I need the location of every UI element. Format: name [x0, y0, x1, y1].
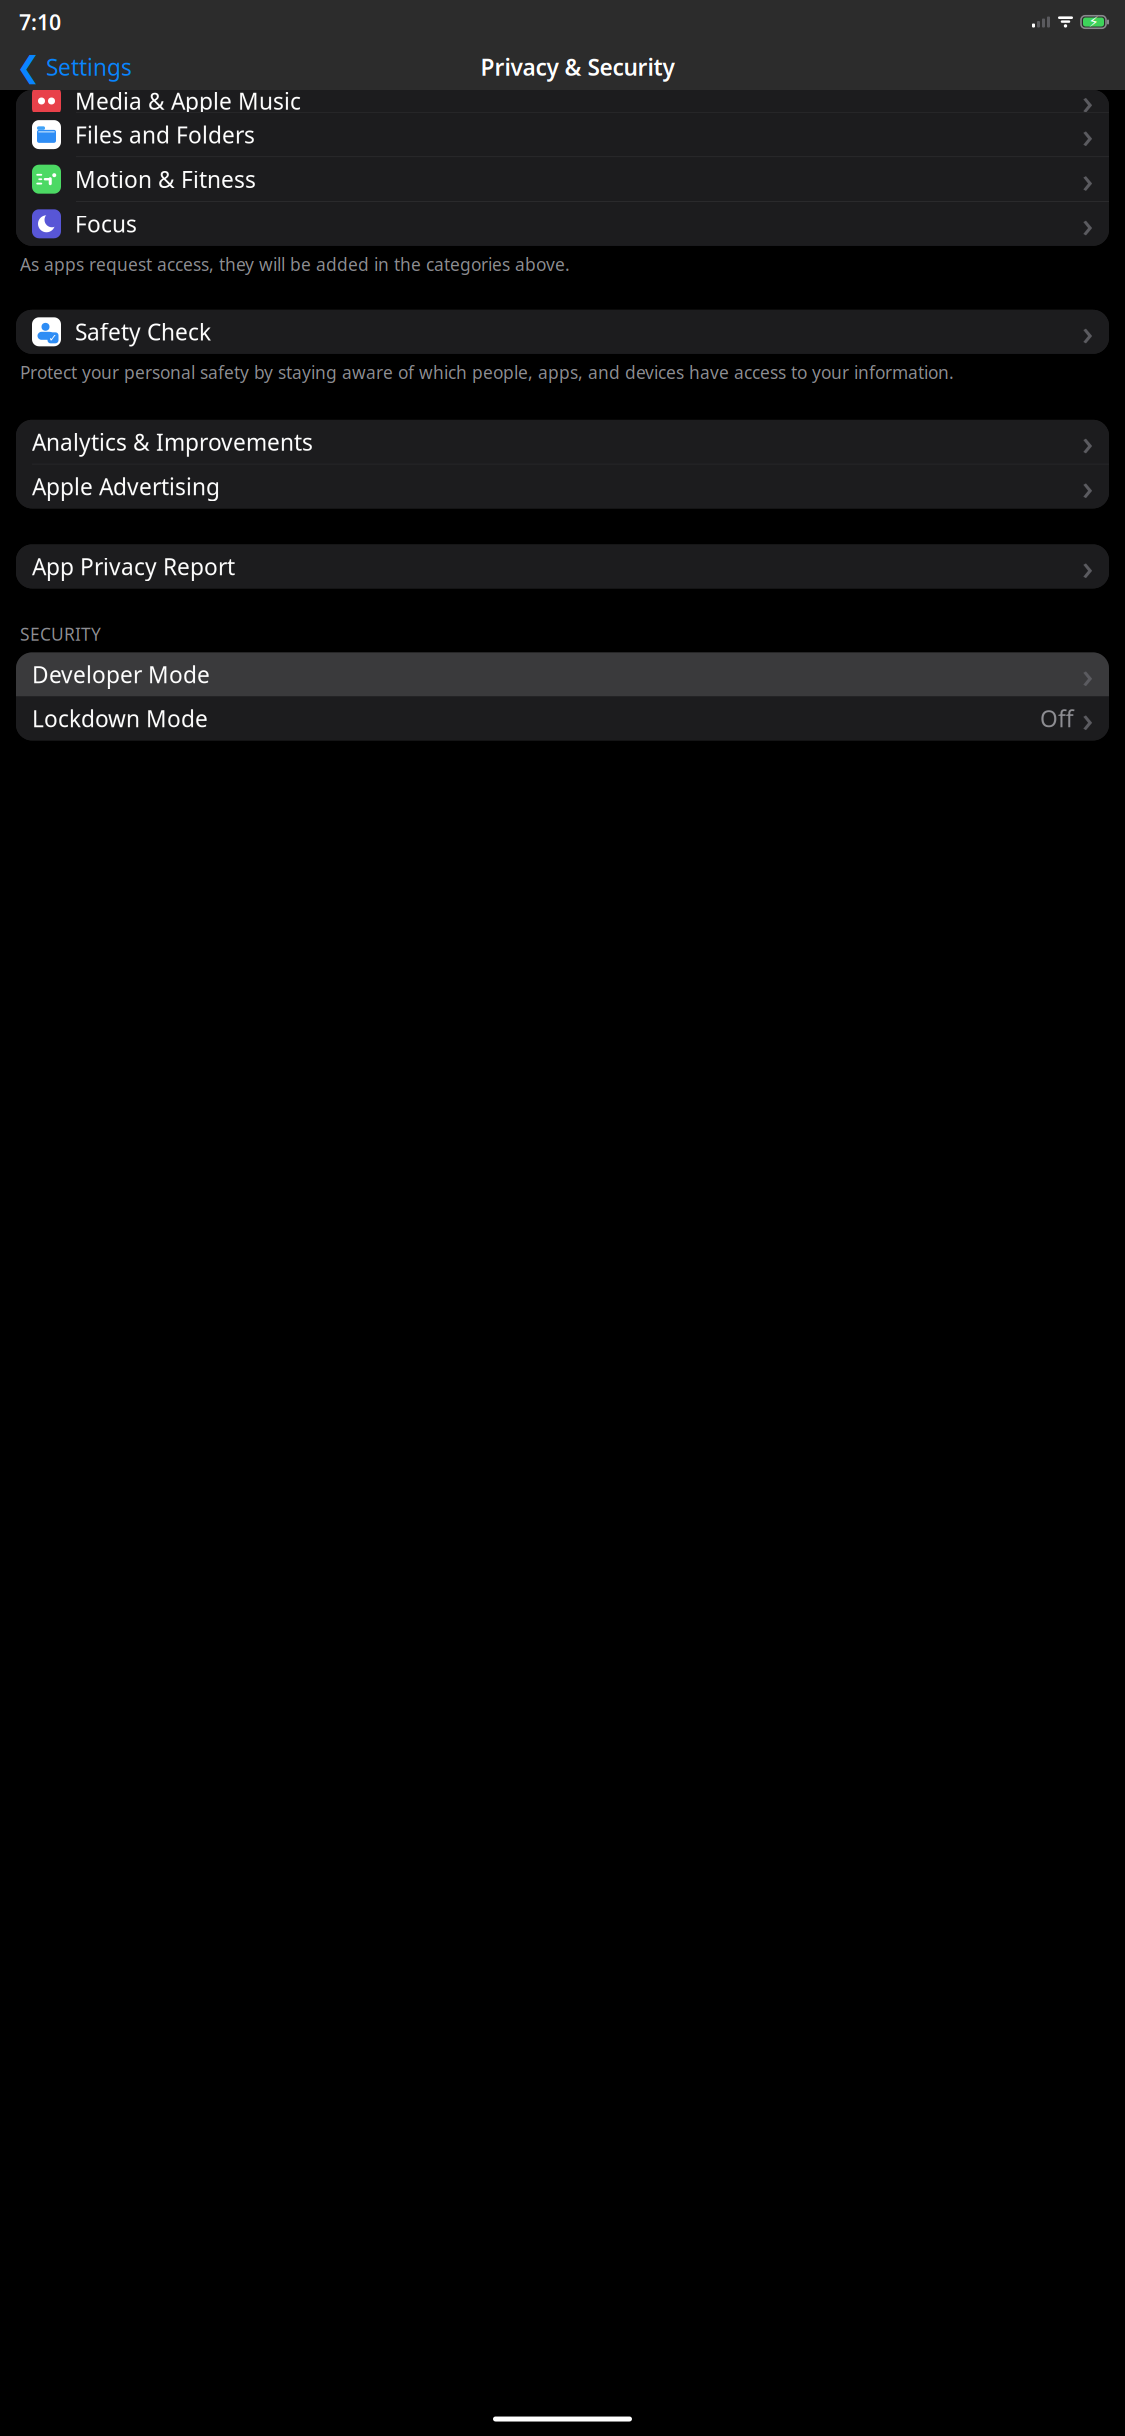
staticText: Settings [46, 52, 132, 82]
button[interactable]: Motion & Fitness [16, 157, 1109, 201]
staticText: › [1082, 695, 1093, 741]
staticText: › [1082, 309, 1093, 355]
button[interactable]: Media & Apple Music [16, 79, 1109, 123]
button[interactable]: Apple Advertising [16, 464, 1109, 508]
staticText: › [1082, 543, 1093, 589]
staticText: Lockdown Mode [32, 703, 208, 733]
staticText: ✓ [48, 332, 57, 344]
staticText: Developer Mode [32, 659, 210, 689]
staticText: Focus [75, 209, 137, 239]
button[interactable]: ✓ [16, 310, 1109, 354]
staticText: › [1082, 156, 1093, 202]
button[interactable]: Developer Mode [16, 652, 1109, 696]
staticText: Apple Advertising [32, 471, 220, 501]
staticText: Media & Apple Music [75, 86, 301, 116]
staticText: ⚡︎ [1088, 14, 1098, 30]
staticText: As apps request access, they will be add… [20, 253, 570, 276]
staticText: › [1082, 112, 1093, 158]
button[interactable]: Analytics & Improvements [16, 420, 1109, 464]
staticText: ❮ [16, 50, 41, 84]
staticText: › [1082, 419, 1093, 465]
staticText: Off [1040, 703, 1074, 733]
button[interactable]: Lockdown Mode [16, 696, 1109, 740]
staticText: App Privacy Report [32, 551, 235, 581]
staticText: › [1082, 651, 1093, 697]
staticText: 7:10 [19, 8, 61, 36]
staticText: › [1082, 201, 1093, 247]
staticText: Protect your personal safety by staying … [20, 361, 954, 384]
staticText: SECURITY [20, 622, 101, 645]
staticText: Files and Folders [75, 119, 255, 150]
staticText: › [1082, 78, 1093, 124]
staticText: Privacy & Security [480, 52, 674, 82]
button[interactable]: ❮ [8, 44, 132, 90]
staticText: Motion & Fitness [75, 164, 256, 194]
staticText: Safety Check [75, 317, 211, 347]
button[interactable]: App Privacy Report [16, 544, 1109, 588]
staticText: › [1082, 463, 1093, 509]
button[interactable]: Focus [16, 202, 1109, 246]
button[interactable]: Files and Folders [16, 113, 1109, 157]
staticText: Analytics & Improvements [32, 427, 313, 457]
